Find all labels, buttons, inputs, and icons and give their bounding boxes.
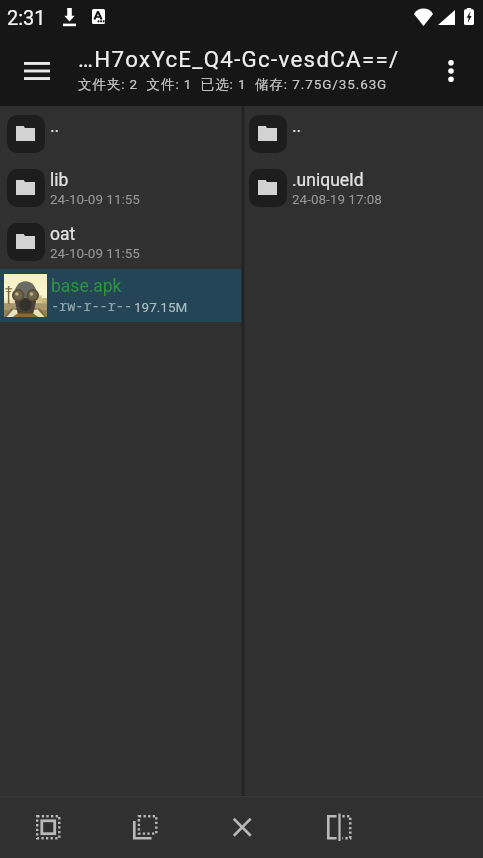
staticText: 2:31 [7,6,46,29]
button[interactable]: .. [245,107,483,161]
button[interactable]: Clear selection [194,797,291,858]
button[interactable]: Menu [11,40,63,102]
button[interactable]: .. [0,107,241,161]
button[interactable]: Select all [0,797,97,858]
staticText: .. [50,116,60,137]
staticText: …H7oxYcE_Q4-Gc-vesdCA==/ [78,46,400,72]
staticText: .uniqueId [292,170,364,191]
staticText: base.apk [51,276,122,297]
staticText: .. [292,116,302,137]
button[interactable]: lib [0,161,241,215]
staticText: 24-10-09 11:55 [50,245,140,261]
button[interactable]: base.apk [0,269,241,322]
button[interactable]: oat [0,215,241,269]
button[interactable]: Invert selection [97,797,194,858]
button[interactable]: Split view [291,797,388,858]
staticText: lib [50,170,69,191]
staticText: 文件夹: 2 文件: 1 已选: 1 储存: 7.75G/35.63G [78,76,388,93]
staticText: 24-10-09 11:55 [50,191,140,207]
staticText: oat [50,224,76,245]
staticText: 197.15M [134,299,188,315]
staticText: 24-08-19 17:08 [292,191,382,207]
button[interactable]: More options [425,45,477,97]
staticText: -rw-r--r-- [51,297,132,315]
button[interactable]: .uniqueId [245,161,483,215]
